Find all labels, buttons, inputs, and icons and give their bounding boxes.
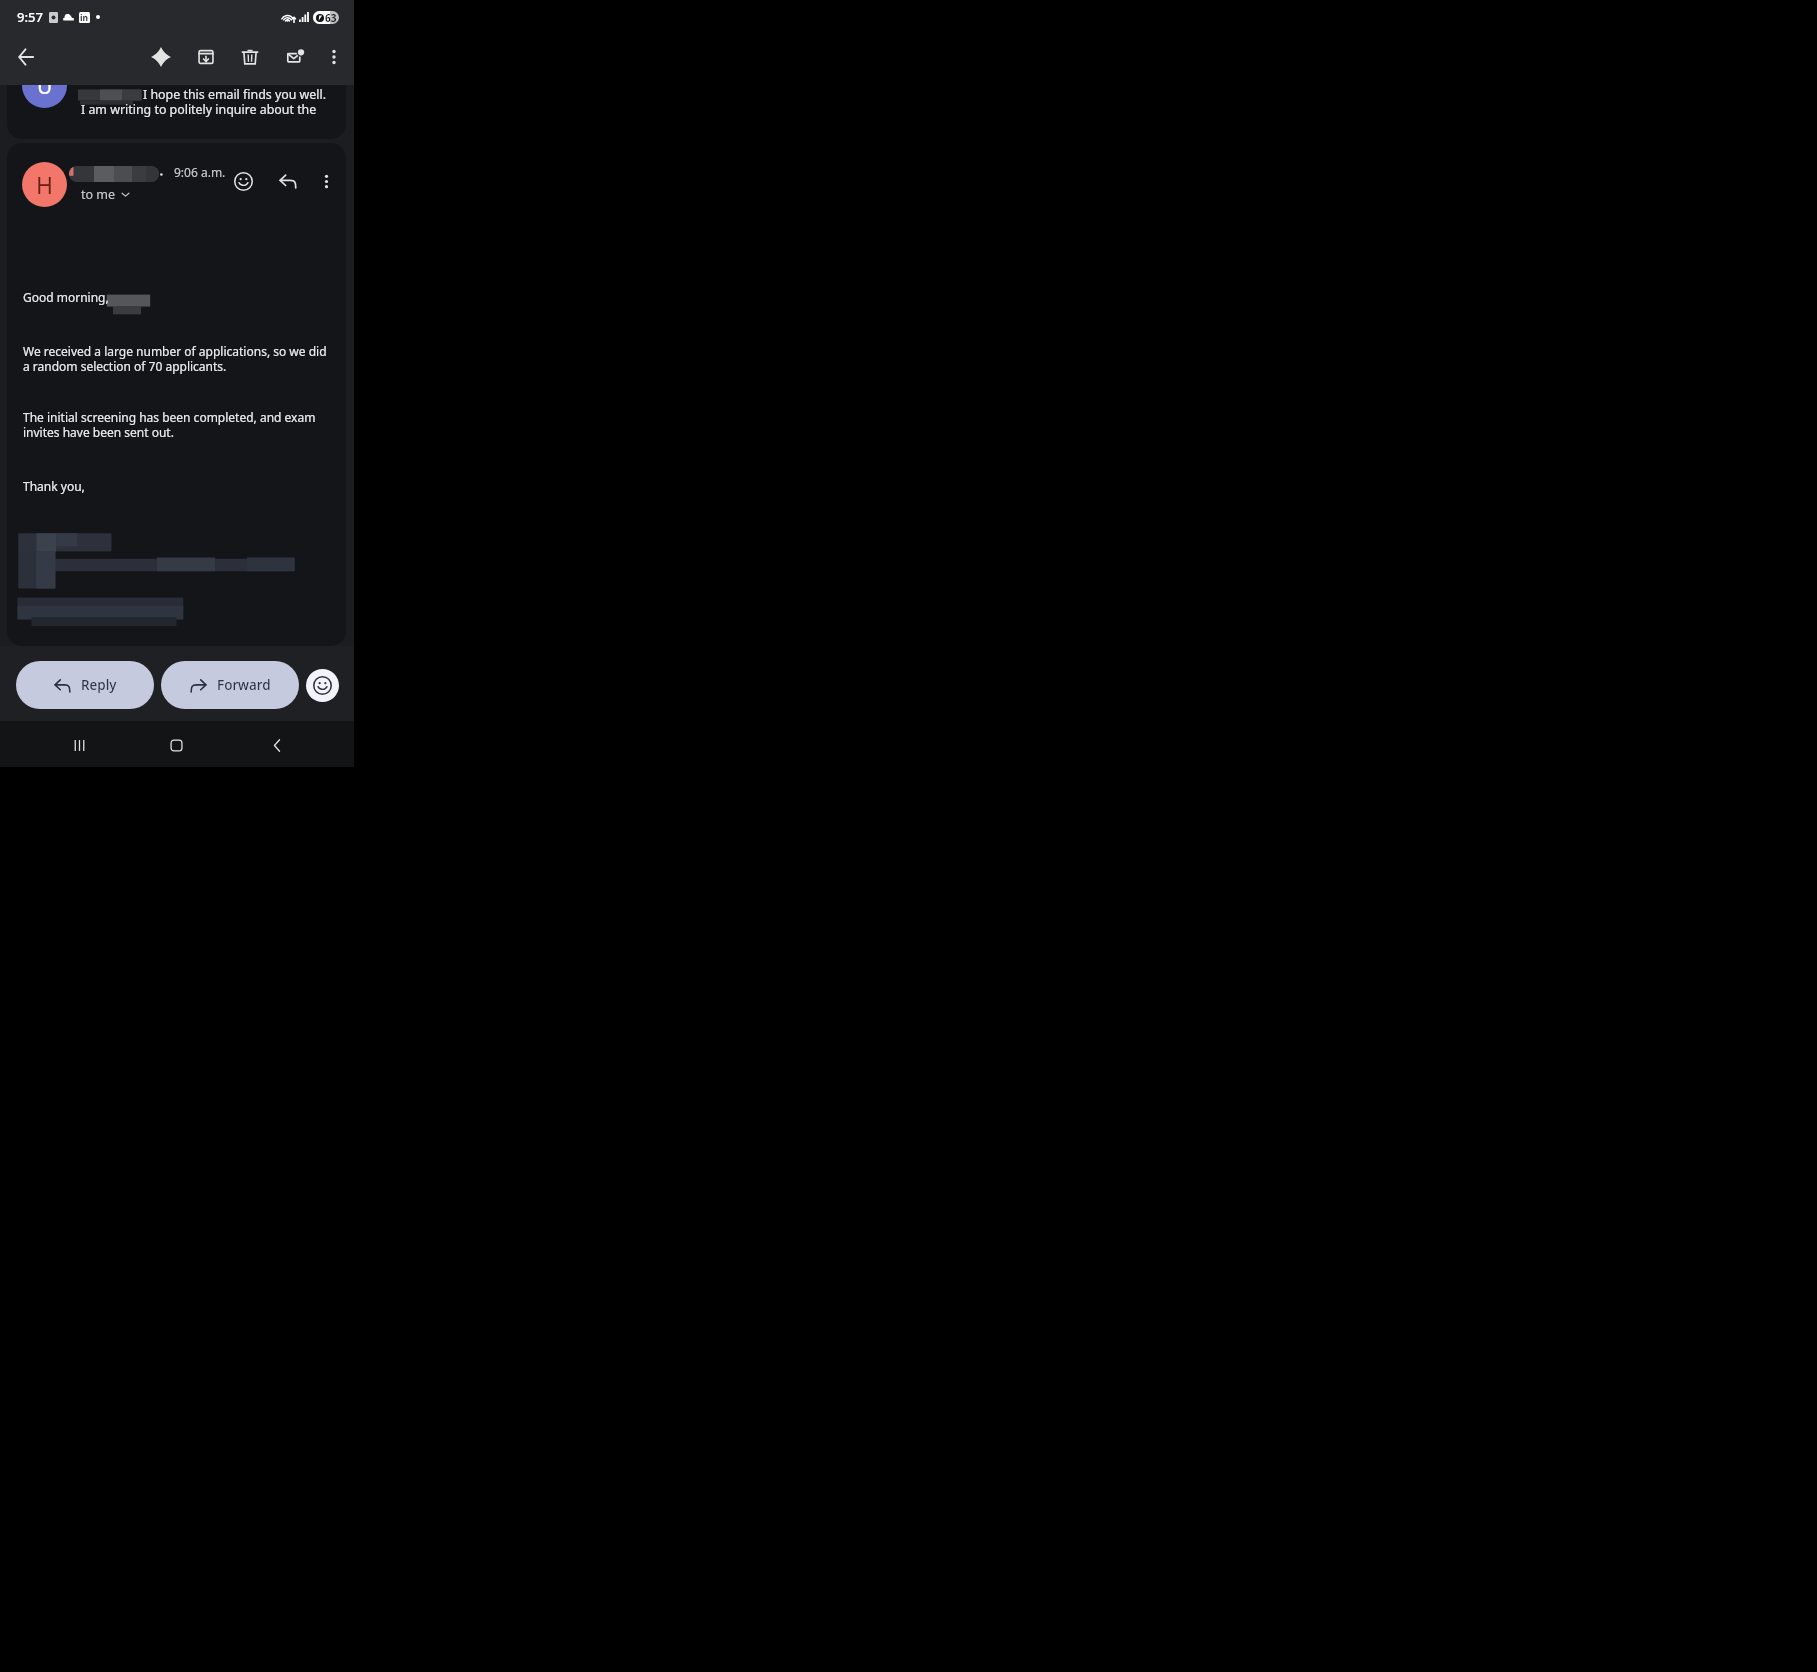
button[interactable]: Delete [232,39,268,75]
button[interactable]: Archive [188,39,224,75]
staticText: 9:57 [17,8,43,26]
staticText: 63 [325,11,337,24]
button[interactable]: Back [8,39,44,75]
staticText: Good morning, [23,289,109,305]
staticText: Forward [217,676,271,694]
button[interactable]: Back [255,723,299,767]
button[interactable]: U [7,85,346,139]
staticText: to me [81,186,116,203]
staticText: We received a large number of applicatio… [23,343,327,359]
button[interactable]: Forward [161,661,299,709]
staticText: U [37,85,53,101]
staticText: Reply [81,676,117,694]
button[interactable]: Summarize with Gemini [143,39,179,75]
button[interactable]: Reply [273,166,303,196]
button[interactable]: Add reaction [228,166,258,196]
staticText: I hope this email finds you well. [143,86,327,103]
button[interactable]: More options [316,39,352,75]
staticText: H [36,169,54,200]
button[interactable]: Reply [16,661,154,709]
button[interactable]: to me [79,185,132,204]
staticText: The initial screening has been completed… [23,409,316,425]
button[interactable]: Home [154,723,198,767]
button[interactable]: Recent apps [57,723,101,767]
staticText: I am writing to politely inquire about t… [81,101,317,118]
staticText: Thank you, [23,478,85,494]
button[interactable]: Sender avatar [22,162,67,207]
button[interactable]: Mark as unread [277,39,313,75]
button[interactable]: More options [311,166,341,196]
staticText: 9:06 a.m. [174,164,226,180]
staticText: in [80,12,89,23]
button[interactable]: Emoji reply [306,669,339,702]
staticText: invites have been sent out. [23,424,174,440]
staticText: a random selection of 70 applicants. [23,358,227,374]
